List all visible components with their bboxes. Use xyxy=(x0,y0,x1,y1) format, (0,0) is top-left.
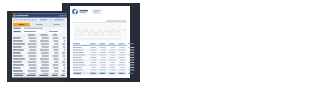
button[interactable]: Reporting dashboard preview xyxy=(0,0,330,90)
